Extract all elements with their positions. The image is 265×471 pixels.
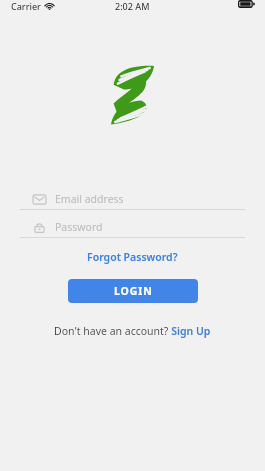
- staticText: Password: [55, 220, 103, 234]
- staticText: 2:02 AM: [115, 0, 150, 12]
- staticText: Don't have an account? Sign Up: [54, 324, 211, 338]
- button[interactable]: Forgot Password?: [81, 247, 184, 267]
- staticText: LOGIN: [114, 284, 153, 298]
- button[interactable]: Email address: [20, 189, 245, 209]
- staticText: Forgot Password?: [87, 250, 178, 264]
- staticText: Carrier: [11, 0, 41, 12]
- button[interactable]: Password: [20, 217, 245, 237]
- staticText: Email address: [55, 192, 124, 206]
- button[interactable]: Don't have an account? Sign Up: [54, 321, 211, 341]
- other: Wi-Fi: [45, 2, 54, 11]
- button[interactable]: LOGIN: [68, 279, 198, 303]
